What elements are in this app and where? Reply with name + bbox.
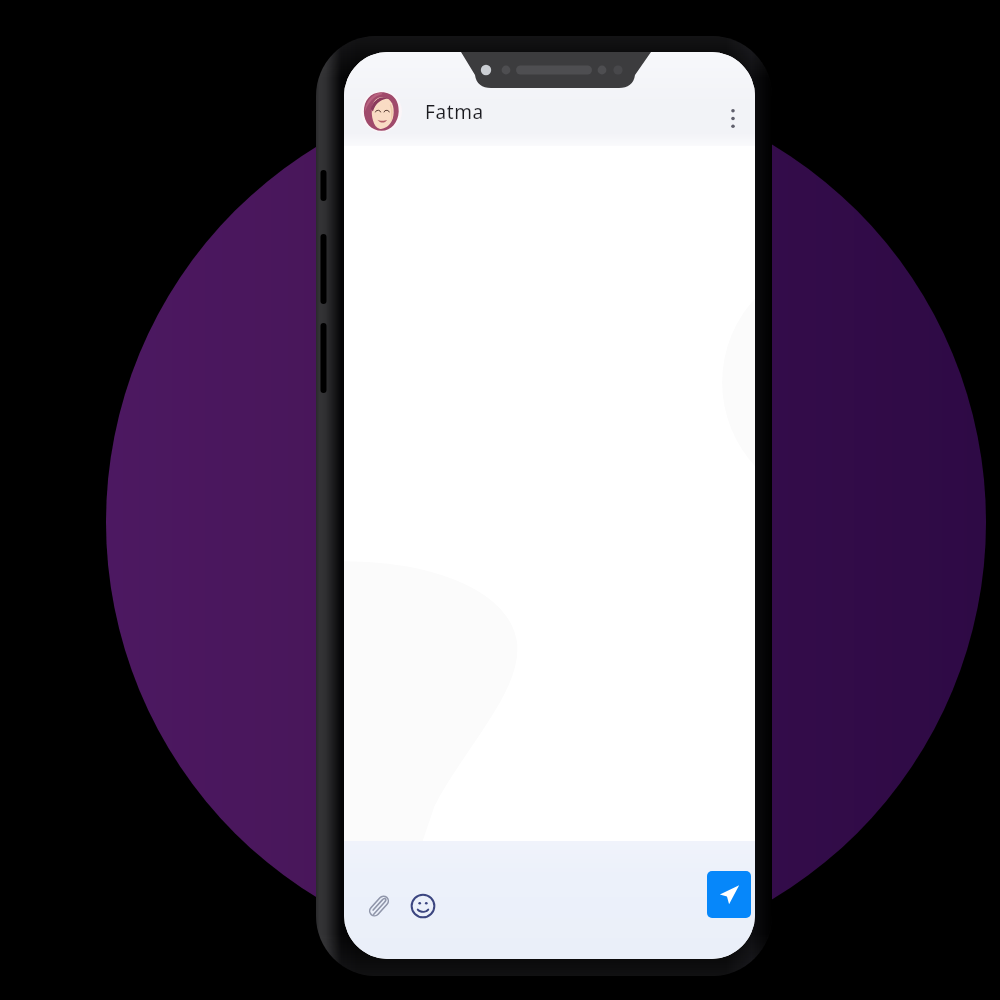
button[interactable]: Attach file	[363, 890, 395, 922]
button[interactable]: Send	[707, 871, 751, 918]
button[interactable]: Fatma	[361, 91, 484, 132]
button[interactable]: More options	[716, 101, 750, 135]
button[interactable]: Emoji	[407, 890, 439, 922]
staticText: Fatma	[425, 99, 484, 125]
